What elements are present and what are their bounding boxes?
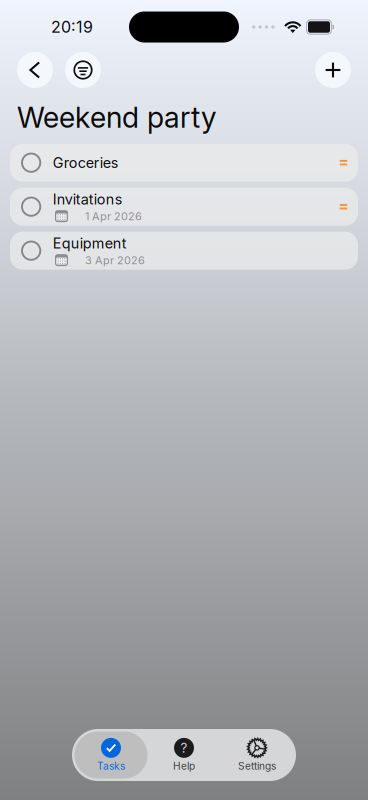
staticText: Settings	[238, 760, 276, 772]
staticText: 3 Apr 2026	[85, 253, 145, 267]
staticText: Invitations	[53, 191, 123, 208]
button[interactable]: Invitations	[10, 188, 358, 226]
button[interactable]: ?	[147, 731, 220, 778]
staticText: Groceries	[53, 154, 119, 171]
staticText: 20:19	[51, 17, 93, 37]
staticText: Help	[173, 760, 195, 772]
button[interactable]: Filter tasks	[65, 52, 101, 88]
button[interactable]: Equipment	[10, 232, 358, 270]
button[interactable]: Settings	[220, 731, 293, 778]
staticText: Weekend party	[17, 100, 217, 135]
staticText: Tasks	[97, 760, 125, 772]
staticText: ?	[180, 740, 187, 756]
staticText: Equipment	[53, 235, 127, 252]
staticText: 1 Apr 2026	[85, 209, 142, 223]
button[interactable]: Groceries	[10, 144, 358, 182]
button[interactable]: Back	[17, 52, 53, 88]
button[interactable]: Tasks	[74, 731, 147, 778]
button[interactable]: Add task	[315, 52, 351, 88]
